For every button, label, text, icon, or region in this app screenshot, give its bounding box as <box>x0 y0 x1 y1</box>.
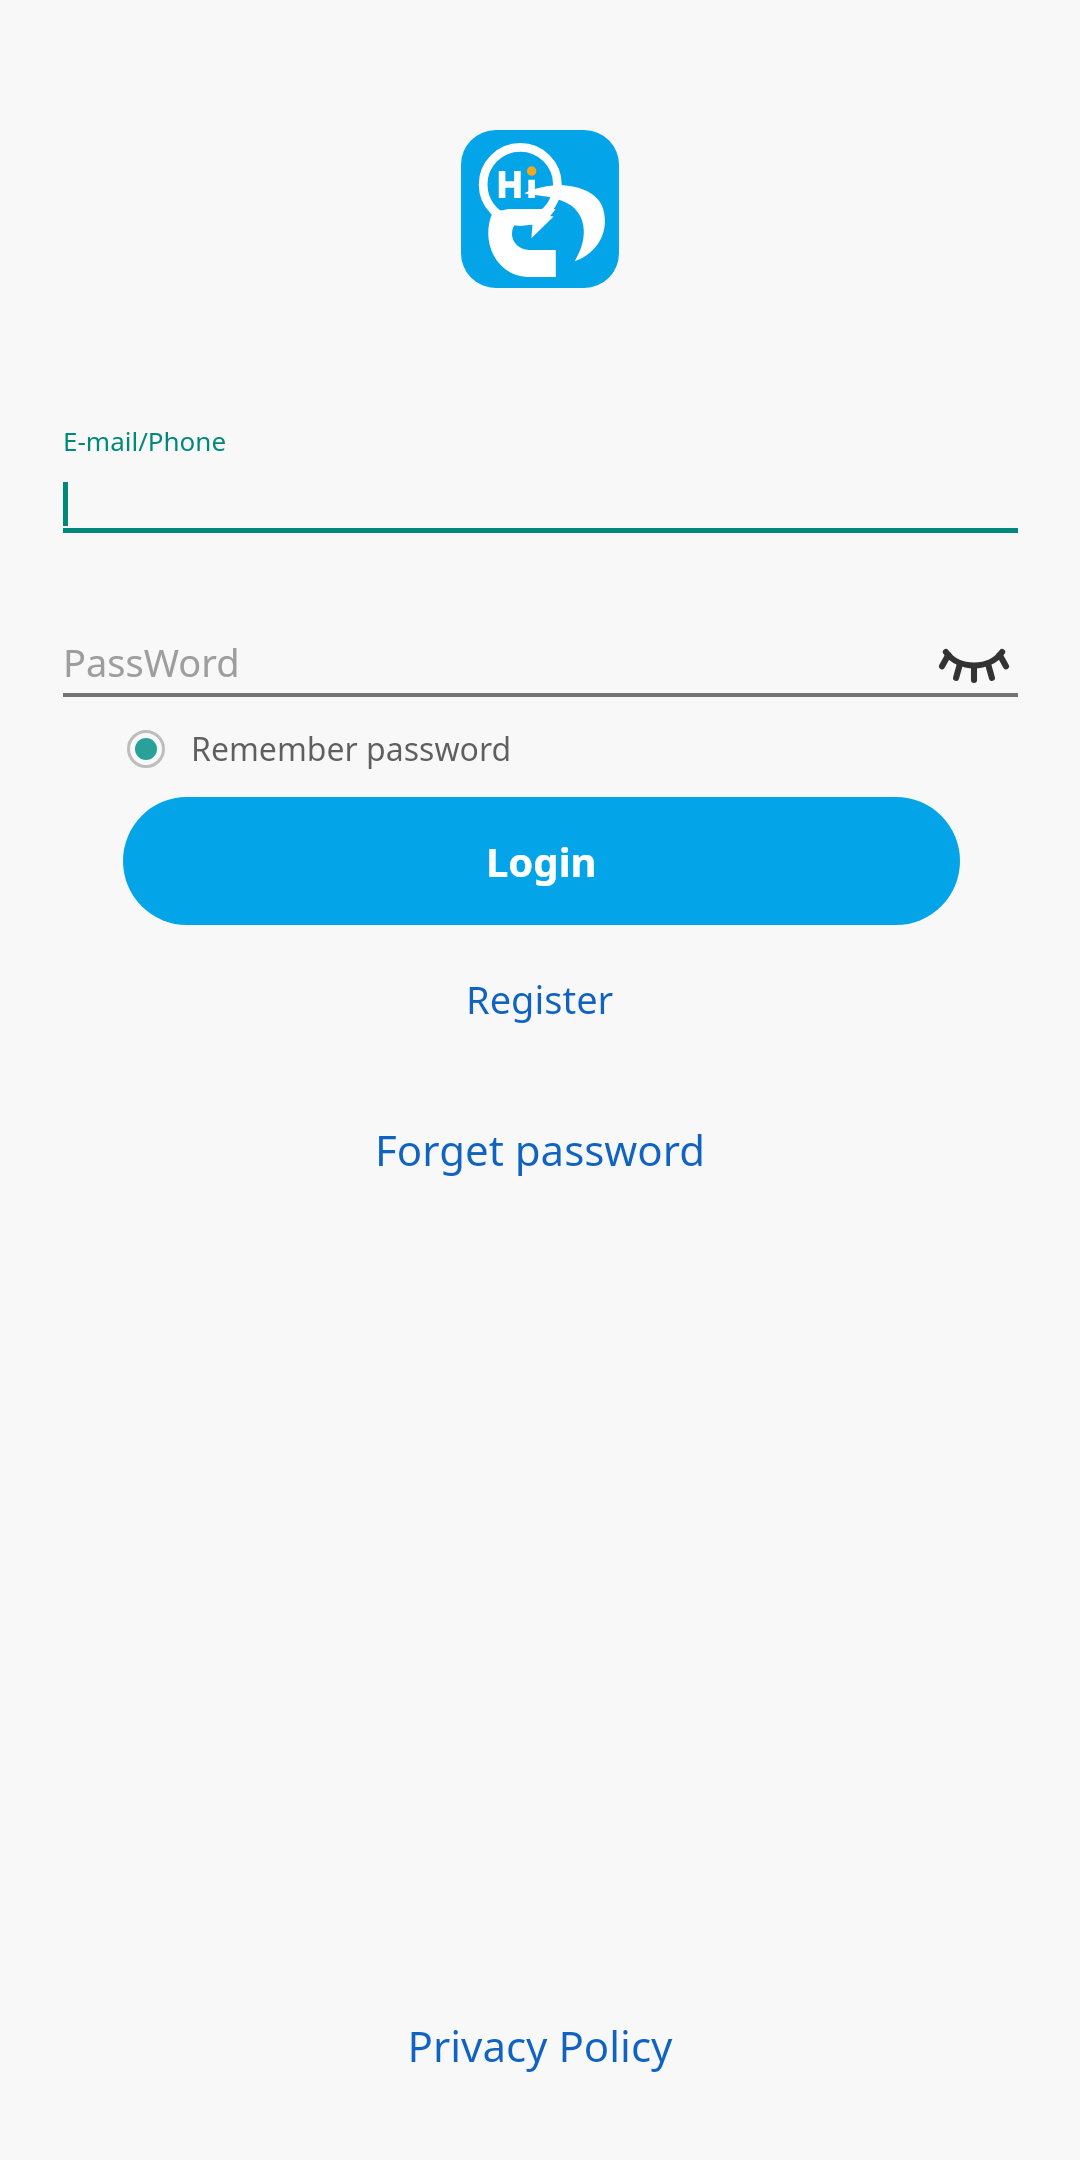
button[interactable]: Privacy Policy <box>407 2002 673 2088</box>
button[interactable]: Login <box>123 797 960 925</box>
button[interactable] <box>63 480 1018 528</box>
staticText: E-mail/Phone <box>63 423 227 458</box>
staticText: PassWord <box>63 636 240 688</box>
button[interactable]: Forget password <box>375 1109 706 1189</box>
staticText: Forget password <box>375 1121 706 1178</box>
button[interactable]: PassWord <box>63 631 1018 693</box>
staticText: Login <box>486 834 597 888</box>
button[interactable]: Show password <box>930 631 1018 693</box>
staticText: Remember password <box>191 727 512 771</box>
button[interactable]: Remember password <box>127 725 512 773</box>
staticText: Register <box>466 973 614 1025</box>
button[interactable]: Register <box>466 961 614 1037</box>
staticText: Privacy Policy <box>407 2017 673 2074</box>
